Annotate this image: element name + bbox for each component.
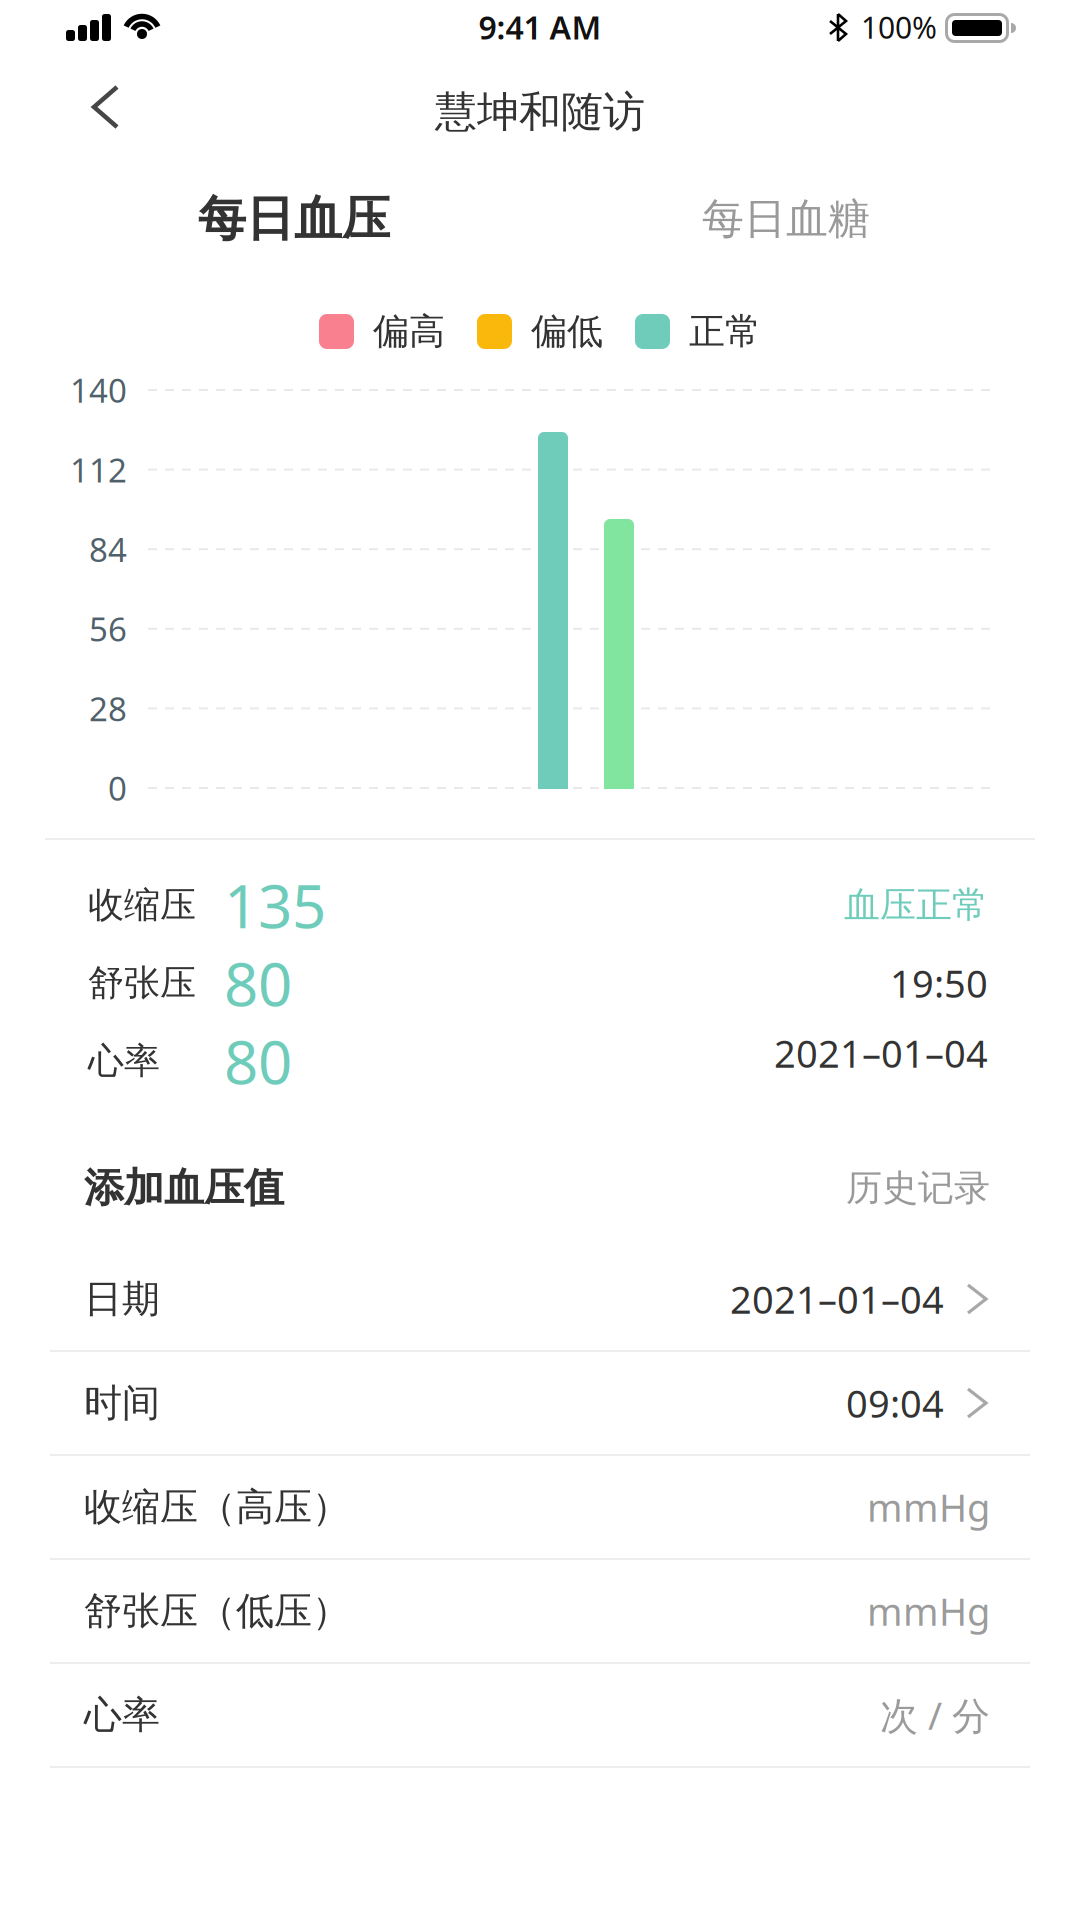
- staticText: 历史记录: [846, 1166, 990, 1210]
- staticText: 2021–01–04: [730, 1274, 944, 1324]
- staticText: 80: [224, 1021, 292, 1101]
- staticText: 80: [224, 943, 292, 1023]
- staticText: 血压正常: [844, 883, 988, 927]
- button[interactable]: 舒张压（低压）: [0, 1560, 1080, 1664]
- staticText: 09:04: [846, 1378, 944, 1428]
- staticText: 0: [108, 766, 127, 810]
- staticText: 19:50: [890, 958, 988, 1008]
- staticText: 收缩压（高压）: [84, 1484, 350, 1530]
- staticText: 偏高: [373, 309, 445, 354]
- staticText: 偏低: [531, 309, 603, 354]
- staticText: 每日血压: [198, 189, 390, 248]
- staticText: mmHg: [867, 1482, 990, 1532]
- staticText: 次 / 分: [880, 1690, 990, 1740]
- staticText: 正常: [689, 309, 761, 354]
- staticText: 舒张压（低压）: [84, 1588, 350, 1634]
- staticText: 日期: [84, 1276, 160, 1322]
- staticText: 时间: [84, 1380, 160, 1426]
- staticText: 每日血糖: [702, 193, 870, 245]
- staticText: 添加血压值: [84, 1163, 284, 1212]
- button[interactable]: Back: [0, 60, 180, 164]
- staticText: 收缩压: [88, 883, 196, 927]
- staticText: 112: [70, 448, 127, 491]
- button[interactable]: 每日血糖: [540, 164, 1032, 274]
- button[interactable]: 日期: [0, 1248, 1080, 1352]
- button[interactable]: 收缩压（高压）: [0, 1456, 1080, 1560]
- staticText: 舒张压: [88, 961, 196, 1005]
- button[interactable]: 心率: [0, 1664, 1080, 1768]
- staticText: mmHg: [867, 1586, 990, 1636]
- staticText: 84: [89, 527, 127, 571]
- staticText: 慧坤和随访: [435, 86, 645, 138]
- button[interactable]: 历史记录: [846, 1166, 990, 1210]
- staticText: 2021–01–04: [774, 1028, 988, 1078]
- staticText: 28: [89, 686, 127, 730]
- staticText: 心率: [88, 1039, 160, 1083]
- staticText: 56: [89, 607, 127, 651]
- staticText: 9:41 AM: [478, 6, 601, 48]
- staticText: 135: [224, 865, 326, 945]
- staticText: 心率: [84, 1692, 160, 1738]
- button[interactable]: 每日血压: [48, 164, 540, 274]
- staticText: 100%: [861, 7, 937, 47]
- button[interactable]: 时间: [0, 1352, 1080, 1456]
- staticText: 140: [70, 368, 127, 412]
